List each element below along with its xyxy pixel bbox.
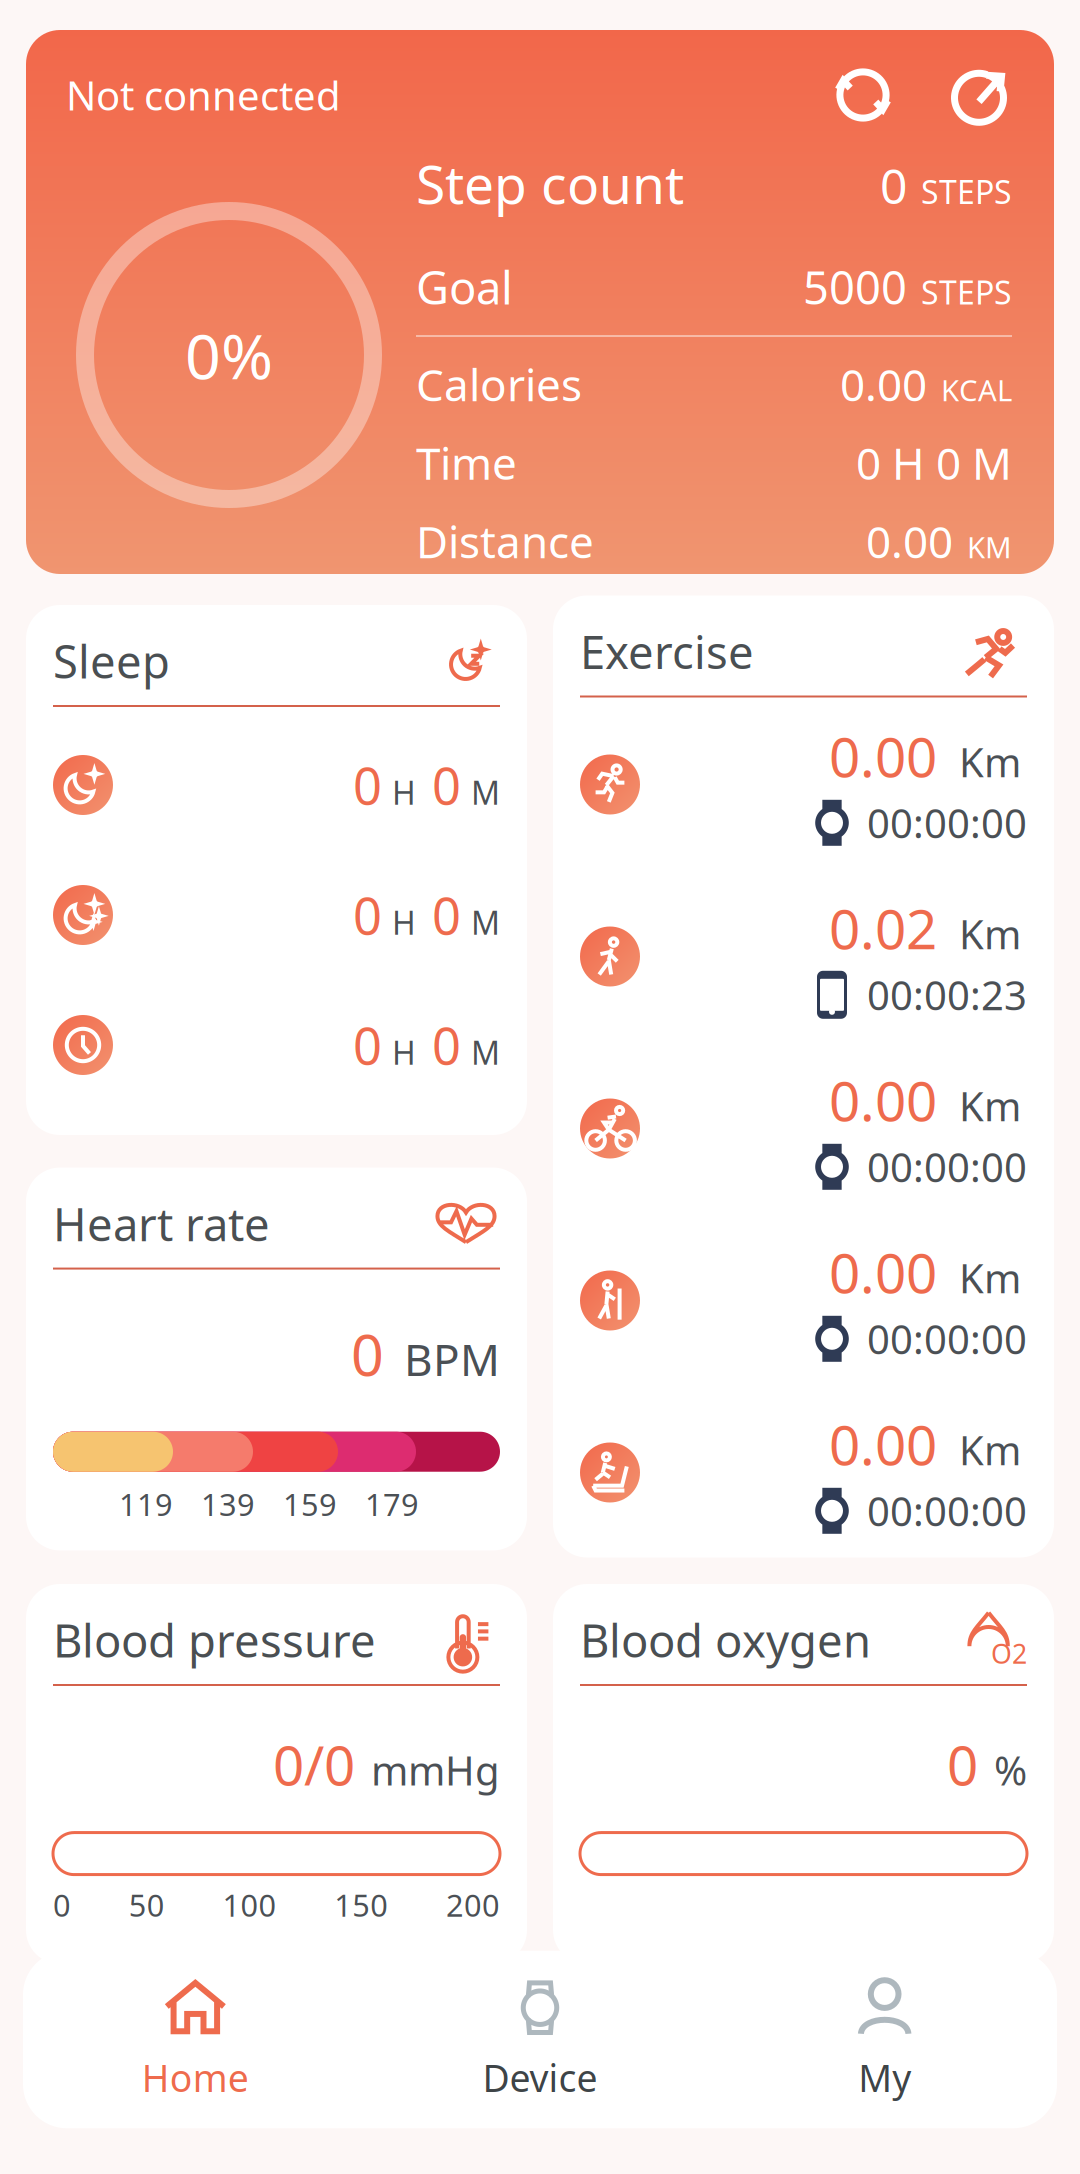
staticText: 0.00 [829, 1236, 937, 1308]
staticText: 0% [185, 313, 273, 397]
button[interactable]: My [712, 1951, 1057, 2128]
staticText: Step count [416, 148, 684, 219]
staticText: 119 [119, 1484, 173, 1524]
button[interactable]: Device [368, 1951, 712, 2128]
staticText: Sleep [53, 631, 170, 691]
staticText: 0 [880, 154, 907, 217]
staticText: Time [416, 433, 517, 492]
staticText: Home [142, 2053, 249, 2102]
staticText: Km [959, 1251, 1021, 1304]
staticText: 0 [353, 751, 382, 819]
staticText: 0.02 [829, 892, 937, 964]
staticText: Calories [416, 355, 582, 413]
staticText: 0 [947, 1728, 978, 1801]
staticText: 0 [432, 881, 461, 949]
staticText: Goal [416, 257, 513, 317]
staticText: H [392, 901, 416, 943]
staticText: 0.00 [840, 355, 927, 413]
staticText: 00:00:00 [867, 1140, 1027, 1193]
staticText: Heart rate [53, 1193, 270, 1254]
staticText: 100 [222, 1885, 276, 1925]
staticText: STEPS [921, 170, 1012, 213]
button[interactable]: Home [23, 1951, 368, 2128]
staticText: 0 [432, 1011, 461, 1079]
staticText: Exercise [580, 621, 754, 682]
staticText: 0 [53, 1885, 71, 1925]
staticText: KM [967, 527, 1012, 566]
staticText: mmHg [371, 1743, 500, 1796]
staticText: M [471, 901, 500, 943]
staticText: 5000 [803, 257, 907, 317]
staticText: 00:00:00 [867, 1312, 1027, 1365]
staticText: Distance [416, 512, 594, 570]
staticText: My [858, 2053, 911, 2102]
staticText: STEPS [921, 271, 1012, 313]
staticText: M [471, 1031, 500, 1073]
staticText: Not connected [66, 68, 341, 121]
staticText: 0.00 [829, 1408, 937, 1480]
staticText: Blood oxygen [580, 1610, 871, 1670]
staticText: Km [959, 1079, 1021, 1132]
staticText: Blood pressure [53, 1610, 376, 1670]
staticText: 0 [353, 881, 382, 949]
staticText: 200 [446, 1885, 500, 1925]
staticText: BPM [404, 1330, 500, 1388]
staticText: 0/0 [273, 1728, 355, 1801]
staticText: 0 H 0 M [856, 433, 1012, 492]
staticText: Km [959, 907, 1021, 960]
staticText: H [392, 1031, 416, 1073]
staticText: % [994, 1743, 1027, 1796]
staticText: 0.00 [866, 512, 953, 570]
staticText: O2 [991, 1636, 1027, 1671]
staticText: Device [482, 2053, 597, 2102]
staticText: 0.00 [829, 720, 937, 792]
staticText: 179 [365, 1484, 419, 1524]
staticText: KCAL [941, 370, 1012, 409]
staticText: 0.00 [829, 1064, 937, 1136]
staticText: 00:00:00 [867, 1484, 1027, 1537]
staticText: H [392, 771, 416, 813]
staticText: 50 [129, 1885, 165, 1925]
staticText: 139 [201, 1484, 255, 1524]
staticText: 159 [283, 1484, 337, 1524]
staticText: M [471, 771, 500, 813]
staticText: 0 [353, 1011, 382, 1079]
staticText: 0 [351, 1316, 384, 1392]
staticText: 00:00:23 [867, 968, 1027, 1021]
staticText: Km [959, 735, 1021, 788]
staticText: 0 [432, 751, 461, 819]
staticText: 150 [334, 1885, 388, 1925]
staticText: 00:00:00 [867, 796, 1027, 849]
button[interactable]: Share [944, 60, 1014, 130]
staticText: Km [959, 1423, 1021, 1476]
button[interactable]: Sync [828, 60, 898, 130]
